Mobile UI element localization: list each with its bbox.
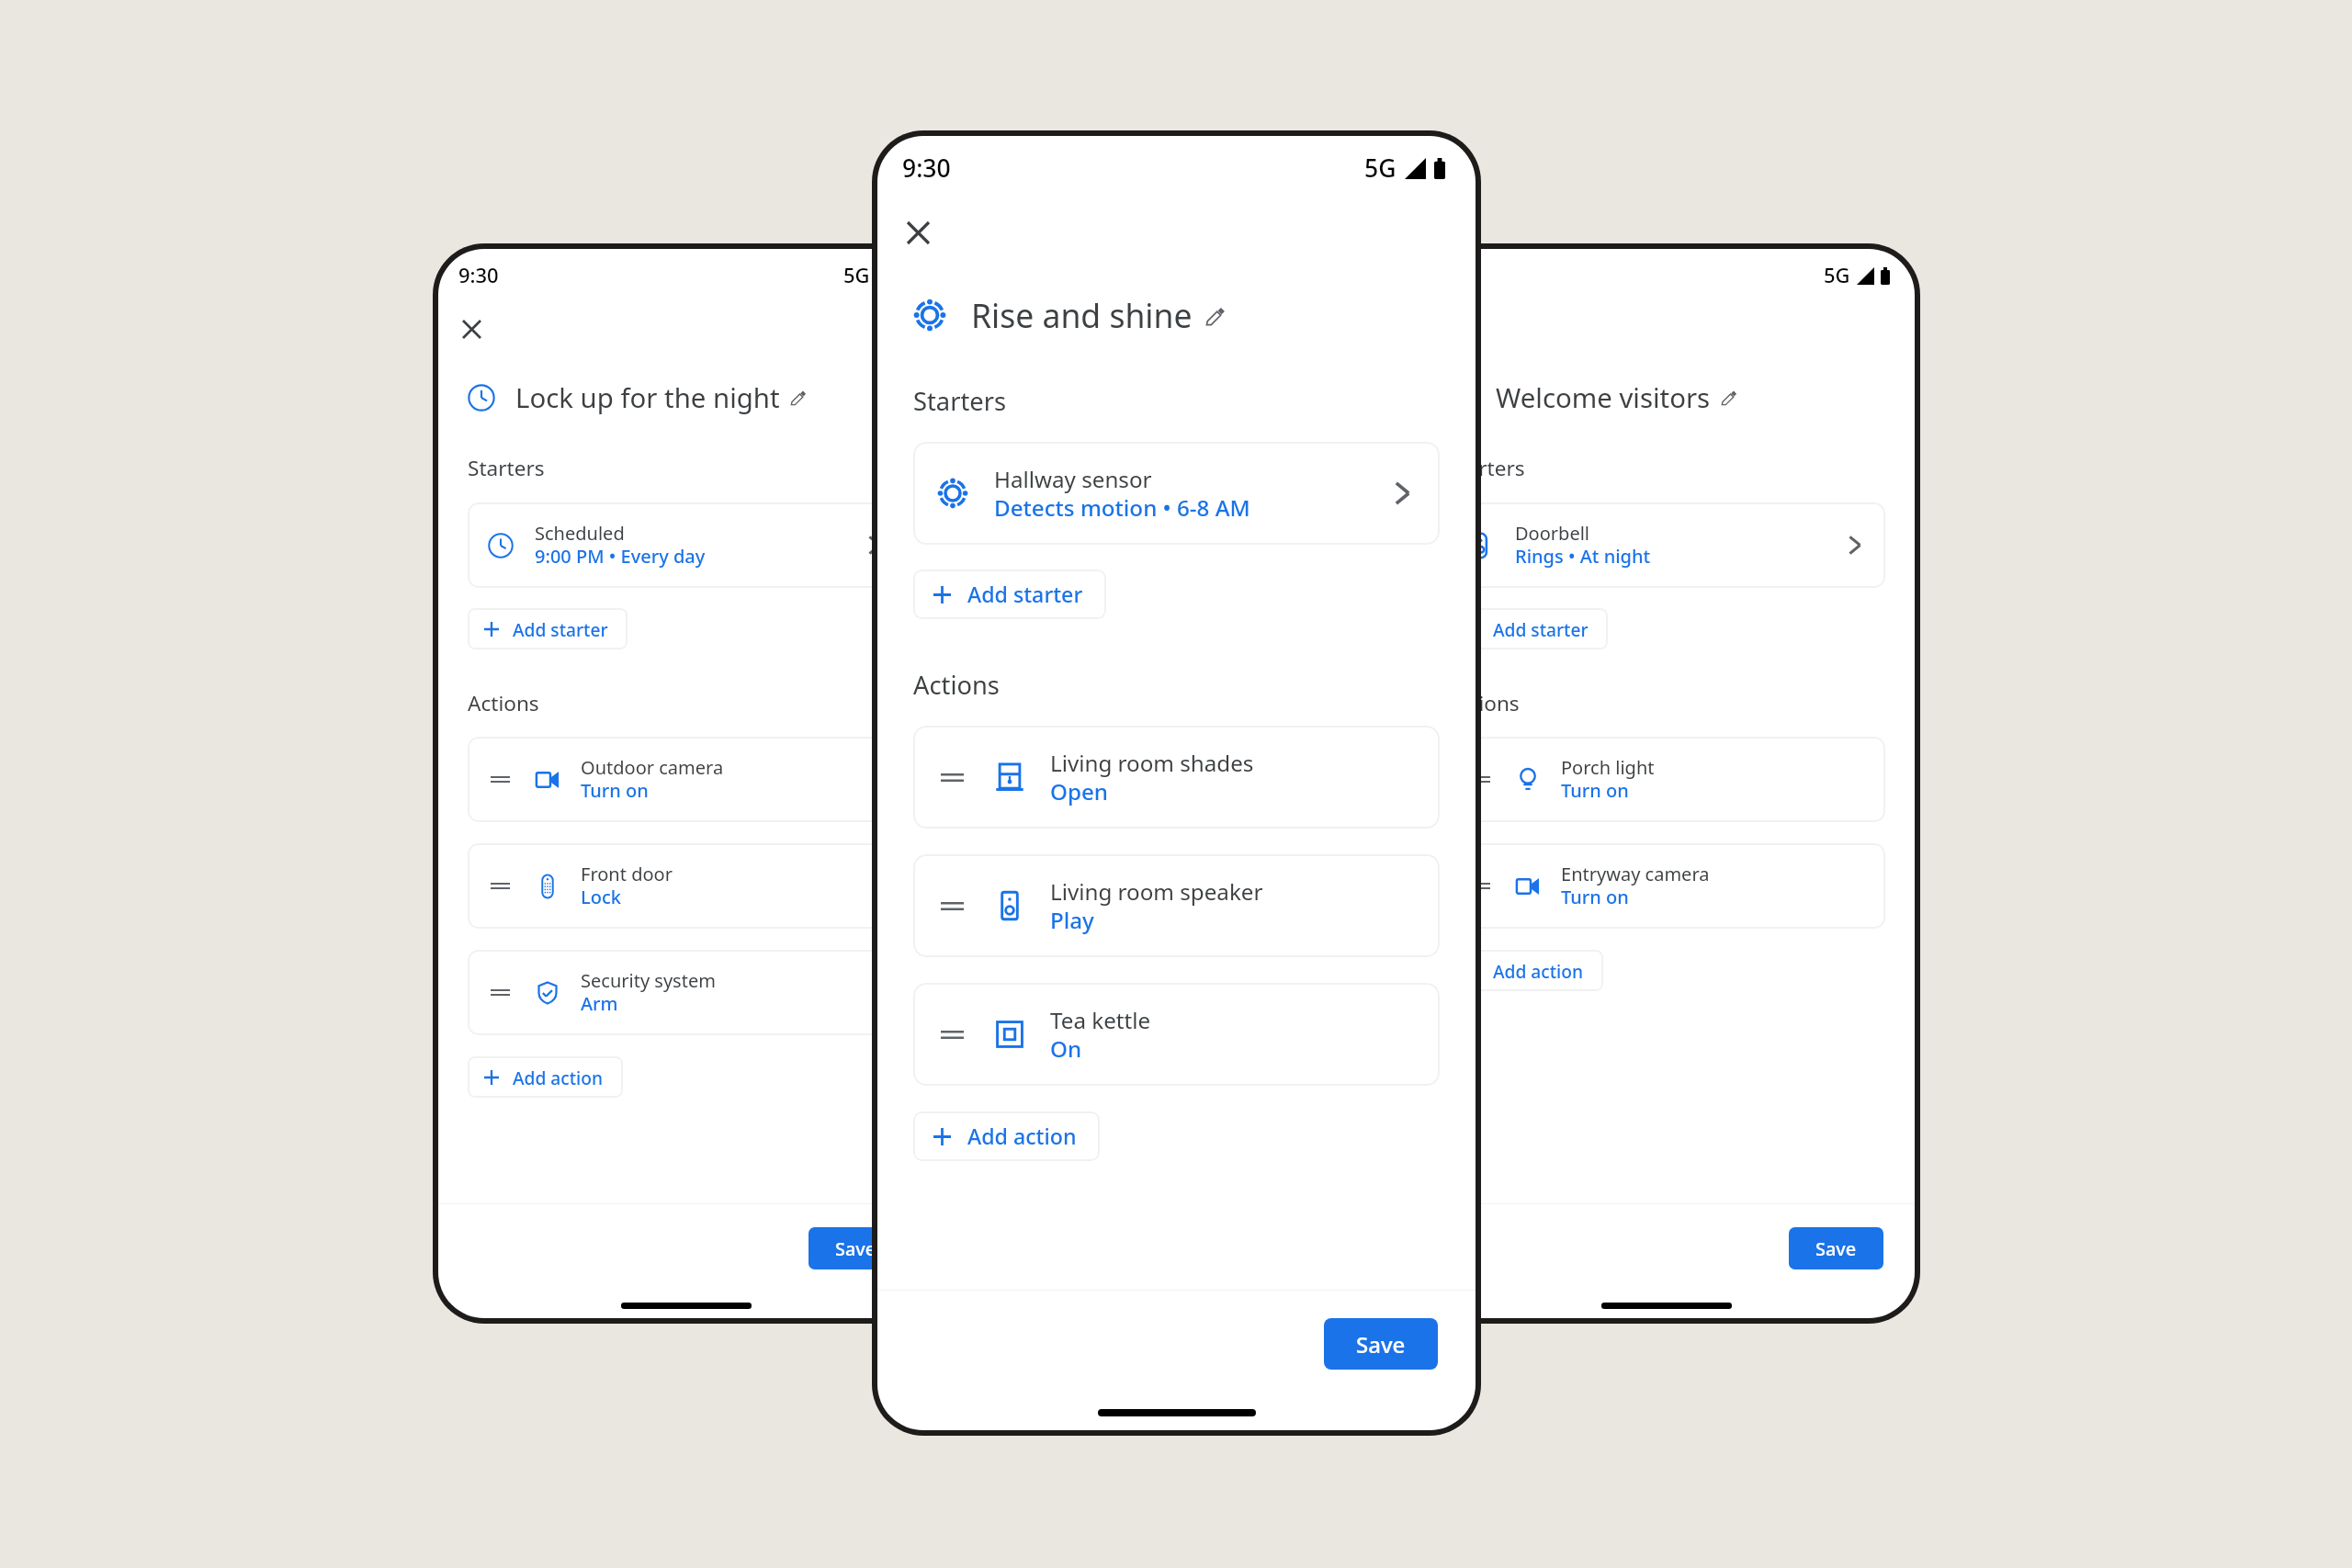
staticText: Starters <box>913 384 1007 418</box>
button[interactable]: Add starter <box>913 570 1106 619</box>
button[interactable]: Add action <box>913 1111 1100 1161</box>
staticText: Rise and shine <box>971 293 1193 337</box>
button[interactable]: Save <box>1789 1227 1883 1269</box>
button[interactable]: Add starter <box>1448 608 1608 649</box>
button[interactable]: Doorbell <box>1448 502 1885 588</box>
button[interactable]: Outdoor camera <box>468 737 905 822</box>
button[interactable]: Security system <box>468 950 905 1035</box>
button[interactable]: Rename automation <box>1722 389 1737 405</box>
staticText: Entryway camera <box>1561 862 1710 886</box>
button[interactable]: Living room shades <box>913 726 1440 829</box>
staticText: Hallway sensor <box>994 464 1152 494</box>
staticText: On <box>1050 1033 1082 1064</box>
staticText: 5G <box>1364 152 1396 185</box>
button[interactable]: Living room speaker <box>913 854 1440 957</box>
staticText: 9:30 <box>902 152 951 185</box>
button[interactable]: Save <box>1324 1318 1438 1370</box>
staticText: Doorbell <box>1515 521 1590 546</box>
staticText: Detects motion • 6-8 AM <box>994 492 1250 523</box>
button[interactable]: Save <box>808 1227 903 1269</box>
staticText: Rings • At night <box>1515 544 1651 569</box>
staticText: Living room shades <box>1050 748 1254 778</box>
staticText: Actions <box>913 668 1000 702</box>
button[interactable]: Add action <box>468 1056 623 1098</box>
button[interactable]: Add action <box>1448 950 1603 991</box>
staticText: Arm <box>581 991 618 1016</box>
staticText: 9:00 PM • Every day <box>535 544 706 569</box>
staticText: Turn on <box>1561 778 1629 803</box>
staticText: Save <box>835 1236 876 1261</box>
staticText: Play <box>1050 905 1094 935</box>
button[interactable]: Front door <box>468 843 905 929</box>
staticText: Starters <box>1448 454 1525 482</box>
staticText: Add action <box>513 1066 604 1089</box>
staticText: Tea kettle <box>1050 1005 1151 1035</box>
staticText: 5G <box>843 262 870 289</box>
staticText: Porch light <box>1561 755 1655 780</box>
staticText: Scheduled <box>535 521 625 546</box>
button[interactable]: Entryway camera <box>1448 843 1885 929</box>
button[interactable]: Rename automation <box>1206 306 1226 325</box>
staticText: Welcome visitors <box>1496 379 1711 416</box>
button[interactable]: Lock up for the night <box>468 379 780 416</box>
button[interactable]: Porch light <box>1448 737 1885 822</box>
staticText: Actions <box>1448 689 1520 717</box>
staticText: Turn on <box>1561 885 1629 909</box>
staticText: Open <box>1050 776 1109 807</box>
staticText: Add action <box>967 1122 1077 1151</box>
button[interactable]: Rise and shine <box>913 293 1193 337</box>
staticText: Front door <box>581 862 673 886</box>
button[interactable]: Close <box>450 308 492 350</box>
staticText: Actions <box>468 689 539 717</box>
button[interactable]: Scheduled <box>468 502 905 588</box>
staticText: Lock <box>581 885 621 909</box>
staticText: Add action <box>1493 959 1584 983</box>
button[interactable]: Close <box>892 207 944 258</box>
staticText: 5G <box>1824 262 1850 289</box>
button[interactable]: Add starter <box>468 608 628 649</box>
staticText: Living room speaker <box>1050 876 1263 907</box>
staticText: Outdoor camera <box>581 755 724 780</box>
button[interactable]: Rename automation <box>791 389 807 405</box>
button[interactable]: Hallway sensor <box>913 442 1440 545</box>
staticText: Lock up for the night <box>515 379 780 416</box>
staticText: Save <box>1815 1236 1857 1261</box>
staticText: Security system <box>581 968 716 993</box>
staticText: Add starter <box>967 580 1083 609</box>
staticText: Save <box>1356 1329 1406 1359</box>
staticText: Add starter <box>513 617 608 641</box>
button[interactable]: Welcome visitors <box>1448 379 1711 416</box>
staticText: Starters <box>468 454 545 482</box>
staticText: Add starter <box>1493 617 1589 641</box>
button[interactable]: Tea kettle <box>913 983 1440 1086</box>
staticText: Turn on <box>581 778 649 803</box>
staticText: 9:30 <box>458 262 499 289</box>
